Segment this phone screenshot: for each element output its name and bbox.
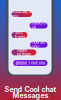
button[interactable]: happy birthday (11, 49, 36, 55)
staticText: Send Cool chat (4, 85, 56, 94)
staticText: hello friend (14, 30, 24, 40)
button[interactable]: please, i love you (13, 60, 47, 66)
button[interactable]: Good day to you (11, 11, 32, 17)
staticText: happy birthday (17, 48, 31, 57)
staticText: Good day to you (12, 9, 32, 19)
staticText: please, i love you (16, 61, 45, 65)
staticText: how are you (32, 40, 45, 50)
staticText: Messages (12, 91, 48, 100)
button[interactable]: thanks a lot (29, 22, 47, 28)
button[interactable]: hello friend (11, 32, 27, 38)
button[interactable]: how are you (30, 42, 47, 48)
staticText: thanks a lot (31, 21, 45, 30)
